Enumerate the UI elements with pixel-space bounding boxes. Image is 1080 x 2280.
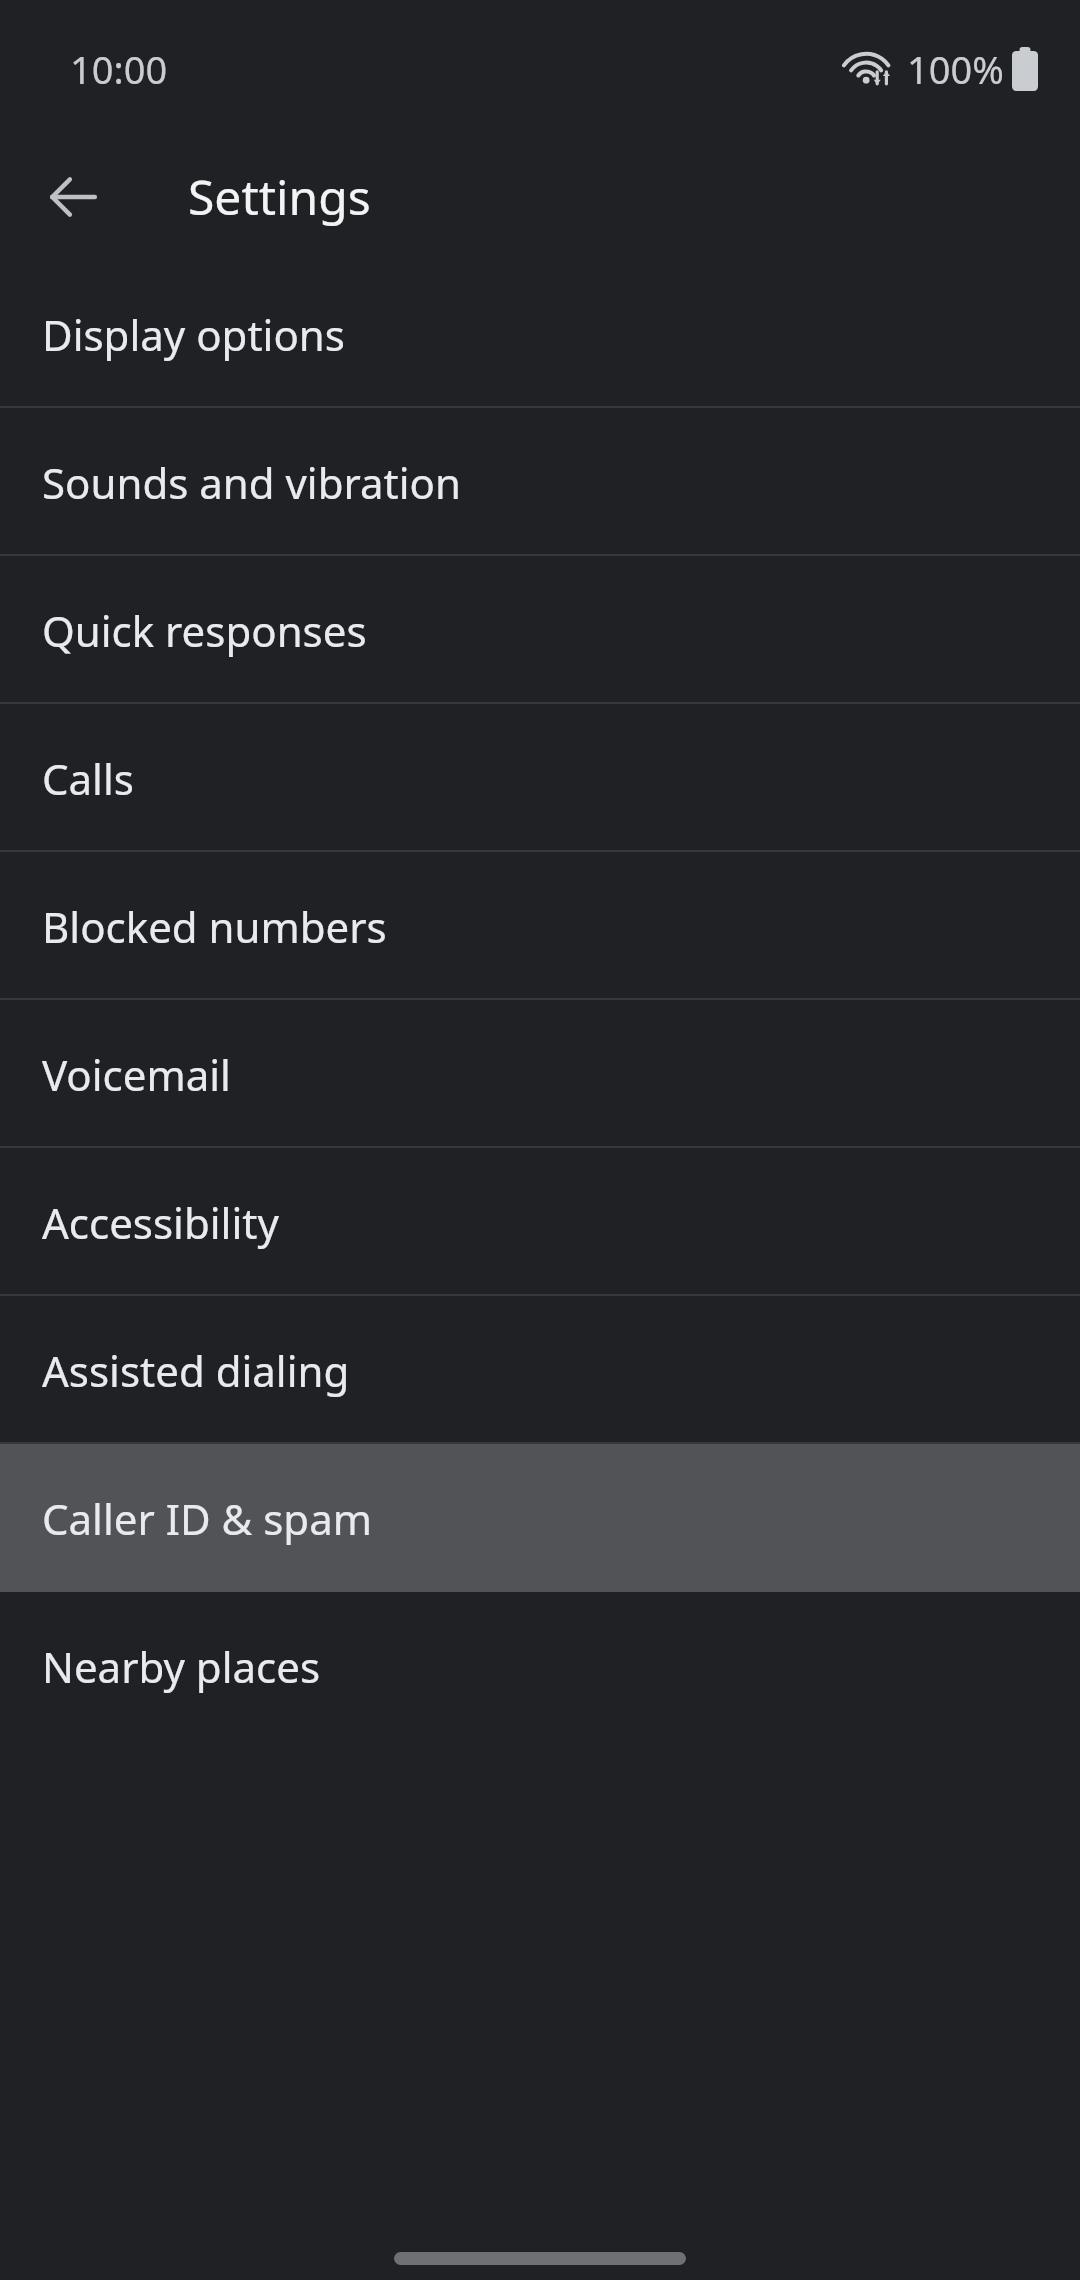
- button[interactable]: Accessibility: [0, 1148, 1080, 1296]
- staticText: Sounds and vibration: [42, 454, 461, 511]
- button[interactable]: Sounds and vibration: [0, 408, 1080, 556]
- button[interactable]: Calls: [0, 704, 1080, 852]
- button[interactable]: Voicemail: [0, 1000, 1080, 1148]
- staticText: Calls: [42, 750, 134, 807]
- staticText: Settings: [188, 164, 371, 229]
- staticText: 100%: [907, 43, 1004, 95]
- staticText: 10:00: [70, 43, 168, 95]
- button[interactable]: Back: [25, 149, 121, 245]
- button[interactable]: Caller ID & spam: [0, 1444, 1080, 1592]
- staticText: Assisted dialing: [42, 1342, 350, 1399]
- button[interactable]: Quick responses: [0, 556, 1080, 704]
- staticText: Accessibility: [42, 1194, 279, 1251]
- staticText: Voicemail: [42, 1046, 231, 1103]
- staticText: Blocked numbers: [42, 898, 387, 955]
- button[interactable]: Blocked numbers: [0, 852, 1080, 1000]
- staticText: Display options: [42, 306, 345, 363]
- button[interactable]: Nearby places: [0, 1592, 1080, 1740]
- button[interactable]: Assisted dialing: [0, 1296, 1080, 1444]
- staticText: Nearby places: [42, 1638, 321, 1695]
- button[interactable]: Display options: [0, 260, 1080, 408]
- staticText: Quick responses: [42, 602, 367, 659]
- staticText: Caller ID & spam: [42, 1490, 372, 1547]
